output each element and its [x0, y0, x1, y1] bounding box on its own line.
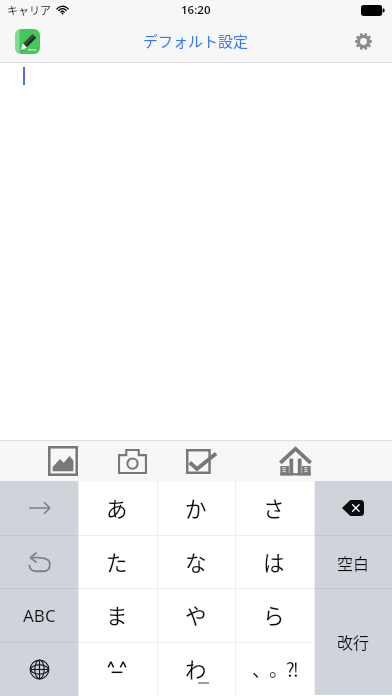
staticText: ら — [263, 599, 285, 630]
staticText: や — [185, 599, 207, 630]
staticText: か — [185, 492, 207, 523]
button[interactable]: 、。?! — [235, 642, 313, 696]
button[interactable]: 改行 — [314, 588, 392, 695]
button[interactable]: Undo — [0, 535, 78, 589]
staticText: 空白 — [337, 551, 370, 574]
staticText: あ — [106, 492, 128, 523]
button[interactable]: ま — [78, 588, 156, 642]
button[interactable]: Settings — [355, 33, 372, 50]
staticText: た — [106, 546, 128, 577]
staticText: 、。?! — [252, 655, 297, 683]
button[interactable]: な — [157, 535, 235, 589]
staticText: さ — [263, 492, 285, 523]
button[interactable]: Camera — [108, 441, 157, 481]
button[interactable]: た — [78, 535, 156, 589]
staticText: は — [263, 546, 285, 577]
button[interactable]: 空白 — [314, 535, 392, 589]
button[interactable]: Delete — [314, 481, 392, 535]
button[interactable]: か — [157, 481, 235, 535]
button[interactable]: わ — [157, 642, 235, 696]
button[interactable]: さ — [235, 481, 313, 535]
button[interactable]: ら — [235, 588, 313, 642]
staticText: 改行 — [337, 630, 370, 653]
button[interactable]: あ — [78, 481, 156, 535]
staticText: キャリア — [7, 2, 51, 18]
button[interactable]: は — [235, 535, 313, 589]
button[interactable]: Switch keyboard — [0, 642, 78, 696]
button[interactable]: Tasks — [176, 441, 227, 481]
button[interactable]: Compose note — [15, 29, 40, 54]
button[interactable]: Home — [269, 441, 322, 481]
button[interactable]: ABC — [0, 588, 78, 642]
staticText: な — [185, 546, 207, 577]
button[interactable]: Convert — [0, 481, 78, 535]
button[interactable]: ^_^ — [78, 642, 156, 696]
staticText: わ — [185, 653, 207, 684]
button[interactable]: Photos — [38, 441, 88, 481]
button[interactable]: や — [157, 588, 235, 642]
staticText: 16:20 — [181, 2, 211, 18]
staticText: ま — [106, 599, 128, 630]
staticText: ABC — [23, 604, 56, 627]
staticText: デフォルト設定 — [143, 30, 249, 52]
